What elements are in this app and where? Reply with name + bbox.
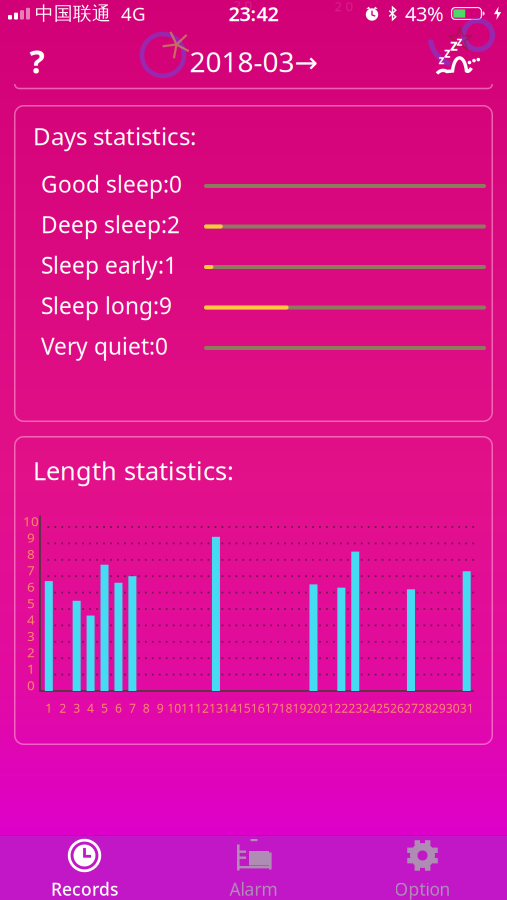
button[interactable]: Sleep records	[429, 27, 503, 84]
staticText: Deep sleep:2	[41, 209, 180, 240]
staticText: 24	[362, 700, 376, 716]
staticText: Days statistics:	[33, 120, 196, 152]
staticText: Length statistics:	[33, 453, 234, 487]
staticText: Option	[394, 877, 450, 900]
staticText: 10	[167, 700, 181, 716]
staticText: 2 0	[233, 0, 252, 14]
staticText: 25	[376, 700, 390, 716]
button[interactable]: Alarm	[169, 835, 338, 900]
staticText: Sleep early:1	[41, 250, 177, 280]
staticText: 8	[143, 700, 150, 716]
staticText: z	[450, 34, 458, 55]
staticText: 中国联通	[35, 2, 111, 25]
staticText: ?	[29, 40, 44, 82]
staticText: 22	[334, 700, 348, 716]
staticText: 8	[27, 545, 35, 563]
staticText: 28	[418, 700, 432, 716]
staticText: Records	[51, 877, 118, 900]
staticText: Alarm	[229, 877, 277, 900]
staticText: 23:42	[228, 0, 278, 27]
staticText: 4G	[121, 1, 146, 26]
staticText: z	[438, 51, 444, 67]
staticText: 23	[348, 700, 362, 716]
staticText: 1	[27, 660, 35, 677]
staticText: 4	[27, 610, 35, 628]
staticText: 2018-03→	[189, 43, 317, 80]
staticText: 3	[73, 700, 80, 716]
staticText: 0	[27, 676, 35, 694]
staticText: 15	[237, 700, 251, 716]
staticText: 21	[320, 700, 334, 716]
staticText: 5	[27, 594, 35, 612]
staticText: 13	[209, 700, 223, 716]
staticText: 31	[460, 700, 474, 716]
staticText: 26	[390, 700, 404, 716]
staticText: 2 0	[334, 0, 353, 15]
staticText: 4	[87, 700, 94, 716]
staticText: 1	[45, 700, 52, 716]
staticText: z	[456, 33, 462, 49]
staticText: 43%	[405, 0, 444, 27]
staticText: 12	[195, 700, 209, 716]
staticText: Very quiet:0	[41, 331, 168, 361]
staticText: 11	[181, 700, 195, 716]
staticText: 30	[446, 700, 460, 716]
button[interactable]: Option	[338, 835, 507, 900]
staticText: 3	[27, 627, 35, 645]
staticText: 9	[157, 700, 164, 716]
staticText: 16	[251, 700, 265, 716]
staticText: Sleep long:9	[41, 290, 172, 321]
staticText: 18	[279, 700, 293, 716]
staticText: 9	[27, 528, 35, 546]
button[interactable]: Records	[0, 835, 169, 900]
staticText: z	[444, 44, 451, 61]
staticText: 17	[265, 700, 279, 716]
staticText: 7	[27, 561, 35, 579]
staticText: 29	[432, 700, 446, 716]
staticText: 5	[101, 700, 108, 716]
staticText: 20	[306, 700, 320, 716]
staticText: 2	[27, 643, 35, 661]
staticText: 14	[223, 700, 237, 716]
staticText: 6	[115, 700, 122, 716]
staticText: 7	[129, 700, 136, 716]
button[interactable]: Help	[15, 39, 59, 83]
staticText: 6	[27, 578, 35, 595]
staticText: Good sleep:0	[41, 169, 182, 199]
staticText: 2	[59, 700, 66, 716]
staticText: 27	[404, 700, 418, 716]
staticText: 10	[23, 512, 39, 530]
staticText: 19	[292, 700, 306, 716]
